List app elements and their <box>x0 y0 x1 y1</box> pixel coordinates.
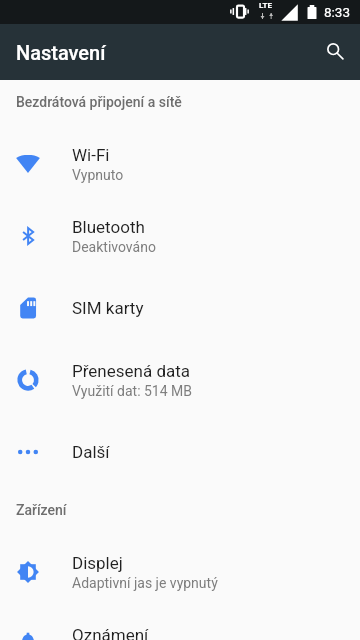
staticText: Deaktivováno <box>72 239 156 255</box>
staticText: Wi-Fi <box>72 145 110 165</box>
staticText: Nastavení <box>16 41 106 64</box>
button[interactable]: Bluetooth <box>0 200 360 272</box>
staticText: Oznámení <box>72 625 149 640</box>
button[interactable]: Další <box>0 416 360 488</box>
staticText: Zařízení <box>16 502 67 518</box>
button[interactable]: Wi-Fi <box>0 128 360 200</box>
button[interactable]: Oznámení <box>0 608 360 640</box>
staticText: Přenesená data <box>72 361 191 381</box>
staticText: Další <box>72 442 110 462</box>
button[interactable]: Přenesená data <box>0 344 360 416</box>
button[interactable]: Displej <box>0 536 360 608</box>
staticText: 8:33 <box>324 4 351 20</box>
staticText: Adaptivní jas je vypnutý <box>72 575 218 591</box>
staticText: Využití dat: 514 MB <box>72 383 193 399</box>
staticText: Bluetooth <box>72 217 145 237</box>
staticText: LTE <box>259 1 272 10</box>
staticText: SIM karty <box>72 298 144 318</box>
button[interactable]: SIM karty <box>0 272 360 344</box>
staticText: Vypnuto <box>72 167 124 183</box>
staticText: Bezdrátová připojení a sítě <box>16 94 182 110</box>
staticText: Displej <box>72 553 123 573</box>
button[interactable]: Search <box>311 28 359 76</box>
